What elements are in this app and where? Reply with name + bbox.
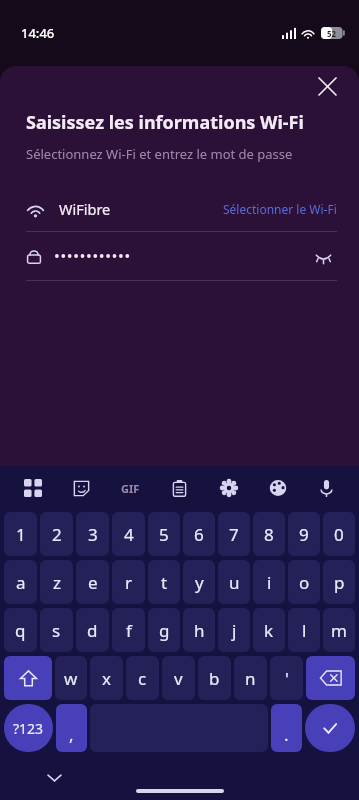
staticText: d bbox=[87, 619, 98, 642]
button[interactable]: t bbox=[148, 560, 180, 604]
staticText: w bbox=[64, 667, 78, 690]
staticText: 8 bbox=[264, 523, 274, 546]
button[interactable]: WiFibre bbox=[0, 187, 359, 231]
staticText: ?123 bbox=[13, 719, 44, 738]
button[interactable]: . bbox=[271, 704, 302, 752]
staticText: t bbox=[161, 571, 168, 594]
button[interactable]: Fermer bbox=[309, 68, 345, 104]
button[interactable]: Applications bbox=[8, 466, 57, 510]
staticText: ' bbox=[285, 667, 289, 690]
button[interactable]: Presse-papiers bbox=[155, 466, 204, 510]
button[interactable]: g bbox=[148, 608, 180, 652]
staticText: e bbox=[88, 571, 98, 594]
button[interactable]: o bbox=[288, 560, 320, 604]
staticText: 4 bbox=[124, 523, 134, 546]
staticText: n bbox=[245, 667, 256, 690]
staticText: p bbox=[334, 571, 345, 594]
staticText: h bbox=[194, 619, 205, 642]
button[interactable]: a bbox=[4, 560, 37, 604]
staticText: 1 bbox=[16, 523, 26, 546]
button[interactable]: 3 bbox=[76, 512, 109, 556]
button[interactable]: Masquer le clavier bbox=[38, 762, 70, 794]
button[interactable]: k bbox=[253, 608, 285, 652]
button[interactable]: d bbox=[76, 608, 109, 652]
staticText: q bbox=[15, 619, 26, 642]
staticText: l bbox=[302, 619, 307, 642]
button[interactable]: ?123 bbox=[4, 704, 53, 752]
staticText: y bbox=[195, 571, 204, 594]
button[interactable]: 6 bbox=[183, 512, 215, 556]
staticText: 2 bbox=[52, 523, 62, 546]
staticText: Saisissez les informations Wi-Fi bbox=[26, 110, 304, 135]
button[interactable]: 2 bbox=[40, 512, 73, 556]
staticText: 14:46 bbox=[21, 24, 55, 42]
button[interactable]: q bbox=[4, 608, 37, 652]
button[interactable]: y bbox=[183, 560, 215, 604]
staticText: o bbox=[299, 571, 310, 594]
button[interactable]: 0 bbox=[323, 512, 355, 556]
staticText: WiFibre bbox=[59, 199, 111, 219]
staticText: v bbox=[174, 667, 183, 690]
button[interactable]: c bbox=[126, 656, 159, 700]
button[interactable]: Effacer bbox=[306, 656, 355, 700]
staticText: m bbox=[331, 619, 347, 642]
staticText: Sélectionnez Wi-Fi et entrez le mot de p… bbox=[26, 145, 293, 163]
button[interactable]: 5 bbox=[148, 512, 180, 556]
button[interactable]: i bbox=[253, 560, 285, 604]
staticText: 9 bbox=[299, 523, 309, 546]
button[interactable]: Paramètres bbox=[204, 466, 253, 510]
staticText: r bbox=[125, 571, 133, 594]
button[interactable]: 8 bbox=[253, 512, 285, 556]
button[interactable]: p bbox=[323, 560, 355, 604]
staticText: f bbox=[126, 619, 132, 642]
staticText: 0 bbox=[334, 523, 344, 546]
button[interactable]: m bbox=[323, 608, 355, 652]
staticText: x bbox=[102, 667, 111, 690]
staticText: 5 bbox=[159, 523, 169, 546]
staticText: b bbox=[209, 667, 220, 690]
button[interactable]: j bbox=[218, 608, 250, 652]
button[interactable]: 7 bbox=[218, 512, 250, 556]
button[interactable]: Valider bbox=[305, 704, 355, 752]
staticText: 6 bbox=[194, 523, 204, 546]
button[interactable]: z bbox=[40, 560, 73, 604]
staticText: 7 bbox=[229, 523, 239, 546]
button[interactable]: Afficher le mot de passe bbox=[309, 242, 337, 270]
button[interactable]: f bbox=[112, 608, 145, 652]
button[interactable]: x bbox=[90, 656, 123, 700]
button[interactable]: h bbox=[183, 608, 215, 652]
button[interactable]: ' bbox=[270, 656, 303, 700]
button[interactable]: e bbox=[76, 560, 109, 604]
staticText: Sélectionner le Wi-Fi bbox=[223, 201, 337, 217]
staticText: k bbox=[264, 619, 274, 642]
button[interactable]: , bbox=[56, 704, 87, 752]
button[interactable]: 9 bbox=[288, 512, 320, 556]
staticText: j bbox=[232, 619, 237, 642]
button[interactable]: s bbox=[40, 608, 73, 652]
button[interactable]: 1 bbox=[4, 512, 37, 556]
button[interactable]: l bbox=[288, 608, 320, 652]
staticText: u bbox=[229, 571, 240, 594]
button[interactable]: GIF bbox=[106, 466, 155, 510]
staticText: GIF bbox=[121, 481, 140, 496]
button[interactable]: Micro bbox=[302, 466, 351, 510]
button[interactable]: Afficher le mot de passe bbox=[0, 232, 359, 280]
staticText: 3 bbox=[88, 523, 98, 546]
staticText: z bbox=[53, 571, 61, 594]
button[interactable]: n bbox=[234, 656, 267, 700]
staticText: i bbox=[267, 571, 272, 594]
button[interactable]: b bbox=[198, 656, 231, 700]
button[interactable]: v bbox=[162, 656, 195, 700]
staticText: . bbox=[284, 723, 289, 746]
staticText: a bbox=[16, 571, 26, 594]
button[interactable]: r bbox=[112, 560, 145, 604]
button[interactable]: Majuscule bbox=[4, 656, 52, 700]
button[interactable]: 4 bbox=[112, 512, 145, 556]
button[interactable]: Thèmes bbox=[253, 466, 302, 510]
staticText: s bbox=[52, 619, 61, 642]
button[interactable]: u bbox=[218, 560, 250, 604]
button[interactable]: w bbox=[55, 656, 87, 700]
staticText: g bbox=[159, 619, 170, 642]
button[interactable]: Autocollants bbox=[57, 466, 106, 510]
